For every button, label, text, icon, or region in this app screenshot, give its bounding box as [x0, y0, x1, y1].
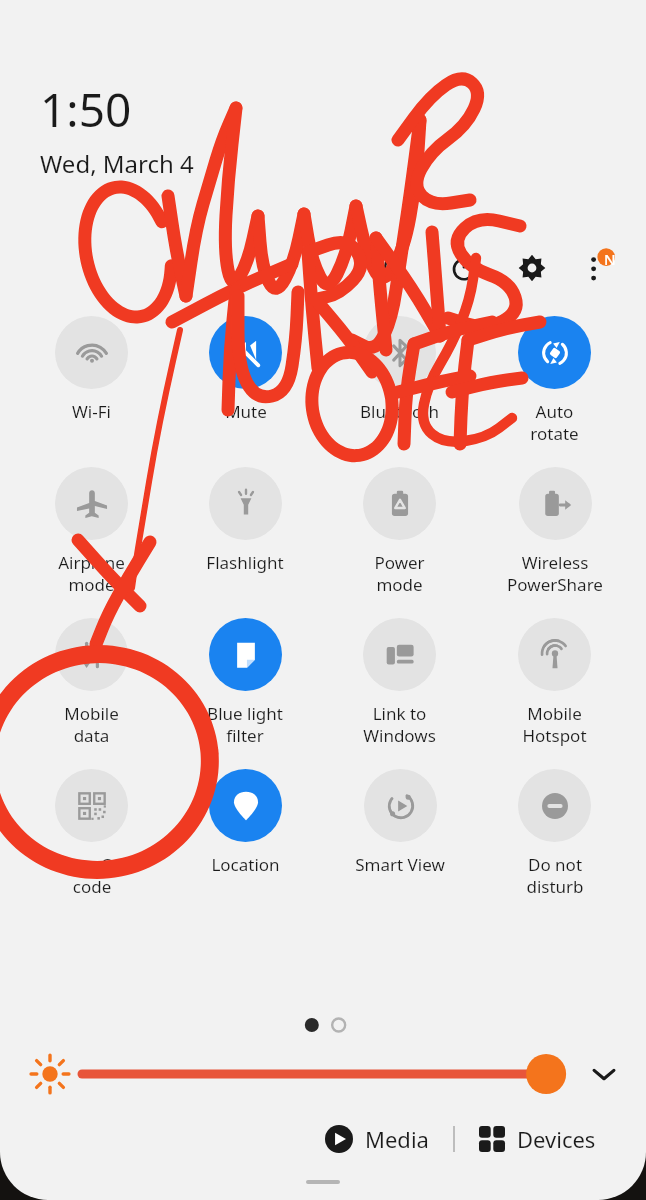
staticText: Do not disturb — [526, 853, 584, 898]
staticText: Airplane mode — [58, 551, 125, 596]
staticText: Devices — [517, 1124, 596, 1154]
staticText: Mobile Hotspot — [522, 702, 587, 747]
button[interactable]: Power — [438, 242, 490, 294]
staticText: Auto rotate — [530, 400, 579, 445]
button[interactable]: Mute — [209, 316, 282, 423]
button[interactable]: Link to Windows — [363, 618, 436, 747]
button[interactable]: Devices — [473, 1118, 602, 1160]
button[interactable]: Airplane mode — [55, 467, 128, 596]
staticText: Media — [365, 1124, 429, 1154]
button[interactable]: Scan QR code — [55, 769, 128, 898]
button[interactable]: Do not disturb — [518, 769, 591, 898]
staticText: Link to Windows — [363, 702, 436, 747]
staticText: Smart View — [355, 853, 445, 876]
button[interactable]: Mobile data — [55, 618, 128, 747]
staticText: Mute — [225, 400, 267, 423]
button[interactable]: Brightness — [82, 1052, 568, 1096]
button[interactable]: More options — [576, 242, 628, 294]
staticText: Wireless PowerShare — [507, 551, 603, 596]
button[interactable]: Expand brightness settings — [582, 1052, 626, 1096]
button[interactable]: Power mode — [363, 467, 436, 596]
staticText: Bluetooth — [360, 400, 439, 423]
staticText: 1:50 — [40, 78, 132, 141]
staticText: Mobile data — [64, 702, 119, 747]
staticText: N — [604, 249, 616, 269]
staticText: Blue light filter — [207, 702, 283, 747]
staticText: Wed, March 4 — [40, 147, 194, 180]
staticText: Power mode — [374, 551, 425, 596]
button[interactable]: Blue light filter — [207, 618, 283, 747]
button[interactable]: Bluetooth — [360, 316, 439, 423]
button[interactable]: Location — [209, 769, 282, 876]
button[interactable]: Mobile Hotspot — [518, 618, 591, 747]
staticText: Location — [211, 853, 280, 876]
button[interactable]: Search — [370, 242, 422, 294]
button[interactable]: Wireless PowerShare — [507, 467, 603, 596]
button[interactable]: Auto rotate — [518, 316, 591, 445]
staticText: Scan QR code — [59, 853, 125, 898]
staticText: Wi-Fi — [72, 400, 111, 423]
button[interactable]: Flashlight — [206, 467, 284, 574]
button[interactable]: Wi-Fi — [55, 316, 128, 423]
button[interactable]: Settings — [506, 242, 558, 294]
staticText: Flashlight — [206, 551, 284, 574]
button[interactable]: Media — [319, 1118, 435, 1160]
button[interactable]: Smart View — [355, 769, 445, 876]
